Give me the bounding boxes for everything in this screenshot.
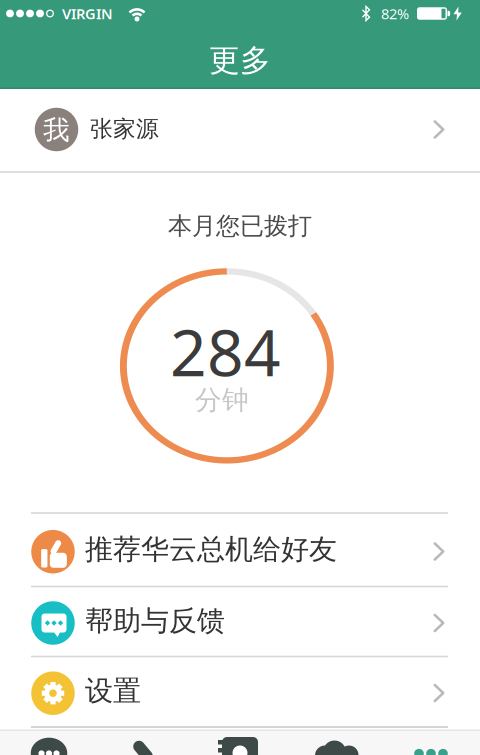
staticText: 设置 — [85, 674, 141, 708]
staticText: 82% — [381, 4, 409, 23]
button[interactable] — [96, 720, 192, 755]
staticText: 更多 — [209, 42, 271, 79]
button[interactable] — [0, 720, 96, 755]
staticText: 本月您已拨打 — [168, 211, 312, 241]
button[interactable]: 帮助与反馈 — [0, 585, 480, 656]
staticText: 张家源 — [90, 115, 159, 143]
button[interactable] — [384, 720, 480, 755]
button[interactable] — [192, 720, 288, 755]
button[interactable] — [288, 720, 384, 755]
staticText: 分钟 — [195, 384, 249, 416]
button[interactable]: 我 — [0, 89, 480, 171]
staticText: 推荐华云总机给好友 — [85, 532, 337, 567]
button[interactable]: 推荐华云总机给好友 — [0, 514, 480, 585]
staticText: VIRGIN — [62, 4, 113, 23]
staticText: 我 — [43, 114, 70, 146]
staticText: 帮助与反馈 — [85, 604, 225, 638]
button[interactable]: 设置 — [0, 655, 480, 726]
staticText: 284 — [170, 309, 281, 394]
